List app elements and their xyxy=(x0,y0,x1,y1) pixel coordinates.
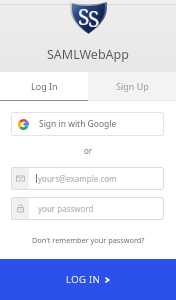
staticText: yours@example.com xyxy=(38,173,117,184)
button[interactable]: Sign Up xyxy=(88,72,176,100)
staticText: Sign in with Google xyxy=(39,118,117,130)
staticText: your password xyxy=(38,203,94,214)
button[interactable]: Don't remember your password? xyxy=(0,235,176,245)
button[interactable]: LOG IN xyxy=(0,259,176,300)
staticText: Sign Up xyxy=(116,80,149,92)
staticText: SAMLWebApp xyxy=(47,46,129,63)
staticText: LOG IN xyxy=(66,273,101,286)
button[interactable]: your password xyxy=(11,197,164,220)
staticText: or xyxy=(84,145,93,154)
staticText: S xyxy=(78,3,90,32)
staticText: Don't remember your password? xyxy=(32,235,145,245)
staticText: S xyxy=(88,5,100,34)
button[interactable]: Log In xyxy=(0,72,88,100)
button[interactable]: Sign in with Google xyxy=(11,112,164,136)
button[interactable]: yours@example.com xyxy=(11,167,164,190)
staticText: Log In xyxy=(31,80,58,92)
